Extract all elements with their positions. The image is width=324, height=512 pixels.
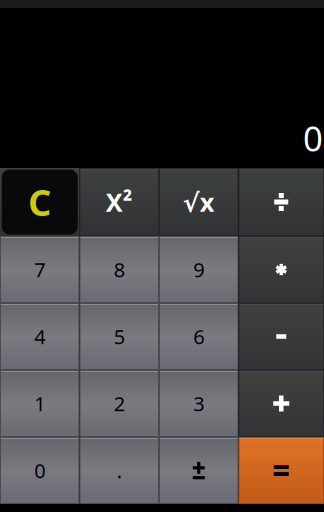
button[interactable]: Plus or minus xyxy=(159,437,238,504)
staticText: 5 xyxy=(114,323,125,350)
staticText: √x xyxy=(183,185,215,219)
staticText: 6 xyxy=(193,323,204,350)
staticText: 0 xyxy=(303,115,323,161)
button[interactable]: 5 xyxy=(79,303,159,370)
staticText: 3 xyxy=(193,390,204,417)
staticText: . xyxy=(117,457,122,484)
button[interactable]: X² xyxy=(79,168,159,236)
button[interactable]: 4 xyxy=(0,303,79,370)
button[interactable]: 6 xyxy=(159,303,238,370)
button[interactable]: 1 xyxy=(0,370,79,437)
staticText: C xyxy=(28,178,51,226)
button[interactable]: Equals xyxy=(238,437,324,504)
button[interactable]: 7 xyxy=(0,236,79,303)
staticText: X² xyxy=(106,185,133,219)
button[interactable]: 0 xyxy=(0,437,79,504)
staticText: 1 xyxy=(34,390,45,417)
button[interactable]: 3 xyxy=(159,370,238,437)
button[interactable]: Divide xyxy=(238,168,324,236)
staticText: 4 xyxy=(34,323,45,350)
button[interactable]: C xyxy=(0,168,79,236)
button[interactable]: 2 xyxy=(79,370,159,437)
button[interactable]: Minus xyxy=(238,303,324,370)
staticText: 2 xyxy=(114,390,125,417)
button[interactable]: 8 xyxy=(79,236,159,303)
staticText: 7 xyxy=(34,256,45,283)
staticText: 9 xyxy=(193,256,204,283)
staticText: 0 xyxy=(34,457,45,484)
staticText: 8 xyxy=(114,256,125,283)
button[interactable]: √x xyxy=(159,168,238,236)
button[interactable]: . xyxy=(79,437,159,504)
button[interactable]: Plus xyxy=(238,370,324,437)
button[interactable]: Multiply xyxy=(238,236,324,303)
button[interactable]: 9 xyxy=(159,236,238,303)
